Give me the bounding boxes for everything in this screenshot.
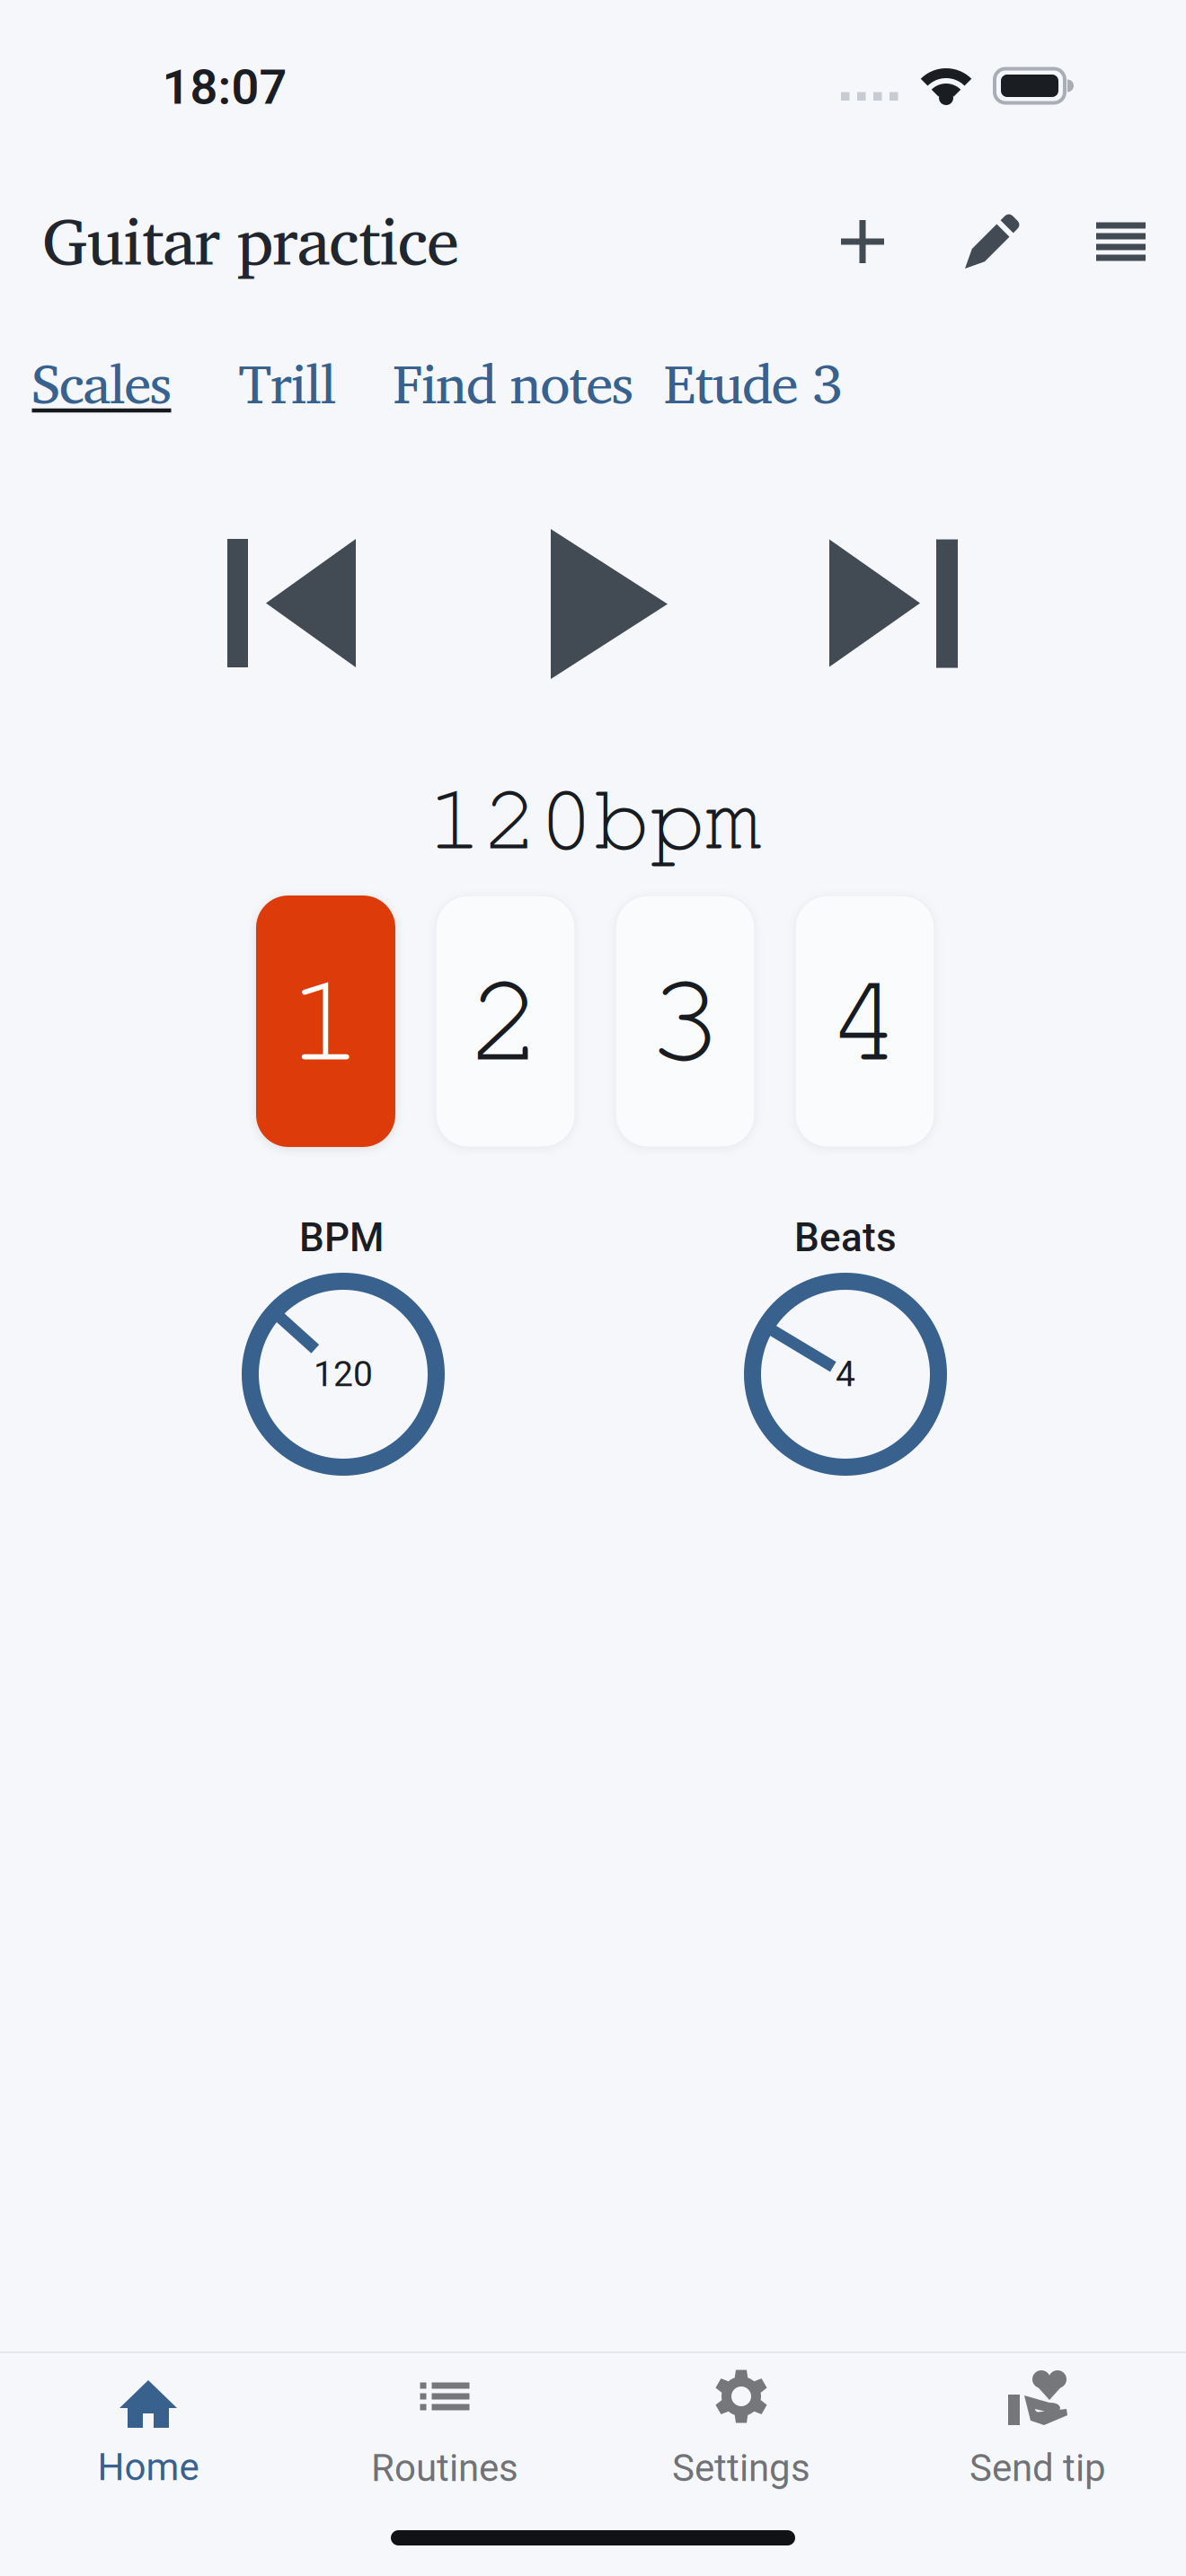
button[interactable]: 2: [436, 895, 575, 1147]
button[interactable]: BPM dial: [242, 1273, 445, 1476]
staticText: Etude 3: [664, 338, 842, 427]
button[interactable]: Edit: [962, 216, 1018, 271]
staticText: Send tip: [969, 2446, 1106, 2490]
staticText: 1: [288, 939, 364, 1091]
staticText: Settings: [672, 2446, 810, 2490]
staticText: 2: [467, 939, 544, 1091]
staticText: BPM: [299, 1215, 384, 1261]
button[interactable]: Previous: [227, 539, 356, 667]
button[interactable]: Home: [49, 2380, 247, 2488]
staticText: 3: [647, 939, 723, 1091]
staticText: Guitar practice: [42, 186, 459, 293]
button[interactable]: 1: [256, 895, 395, 1147]
button[interactable]: Send tip: [939, 2380, 1137, 2488]
button[interactable]: 3: [615, 895, 755, 1147]
button[interactable]: Menu: [1096, 222, 1146, 261]
staticText: 4: [827, 939, 903, 1091]
button[interactable]: Find notes: [393, 338, 633, 427]
staticText: Routines: [371, 2446, 518, 2490]
button[interactable]: Beats dial: [744, 1273, 947, 1476]
staticText: Beats: [794, 1215, 897, 1261]
button[interactable]: Trill: [239, 338, 336, 427]
staticText: Scales: [32, 338, 171, 427]
staticText: 4: [836, 1354, 855, 1395]
button[interactable]: Settings: [642, 2380, 840, 2488]
button[interactable]: 4: [795, 895, 934, 1147]
button[interactable]: Etude 3: [664, 338, 842, 427]
button[interactable]: Next: [829, 539, 958, 668]
staticText: 18:07: [162, 59, 287, 116]
button[interactable]: Add: [841, 220, 884, 263]
staticText: Home: [97, 2445, 199, 2489]
staticText: Find notes: [393, 338, 633, 427]
staticText: Trill: [239, 338, 336, 427]
button[interactable]: Play: [551, 529, 668, 679]
button[interactable]: Routines: [346, 2380, 544, 2488]
button[interactable]: Scales: [32, 338, 171, 427]
staticText: 120bpm: [427, 759, 761, 872]
staticText: 120: [314, 1354, 373, 1395]
